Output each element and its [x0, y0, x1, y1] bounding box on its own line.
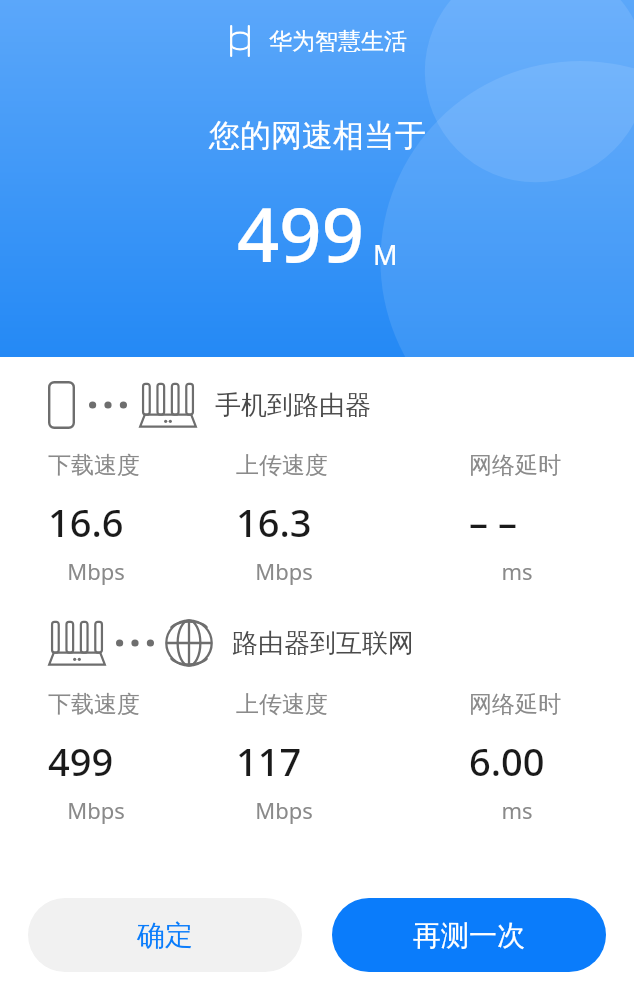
staticText: 上传速度 — [236, 451, 328, 480]
staticText: 下载速度 — [48, 690, 140, 719]
staticText: 16.6 — [48, 496, 124, 548]
staticText: 确定 — [137, 918, 193, 953]
staticText: 上传速度 — [236, 690, 328, 719]
staticText: ms — [469, 795, 565, 825]
staticText: – – — [469, 496, 517, 548]
staticText: 网络延时 — [469, 690, 561, 719]
staticText: 手机到路由器 — [215, 389, 371, 422]
staticText: 华为智慧生活 — [269, 27, 407, 56]
staticText: M — [373, 236, 398, 273]
staticText: 499 — [48, 735, 114, 787]
staticText: 您的网速相当于 — [209, 116, 426, 155]
staticText: 路由器到互联网 — [232, 627, 414, 660]
staticText: Mbps — [236, 556, 332, 586]
staticText: Mbps — [48, 795, 144, 825]
staticText: 499 — [237, 183, 364, 284]
staticText: Mbps — [236, 795, 332, 825]
staticText: ms — [469, 556, 565, 586]
staticText: 117 — [236, 735, 302, 787]
other: Huawei logo — [227, 26, 253, 56]
staticText: 6.00 — [469, 735, 545, 787]
staticText: 网络延时 — [469, 451, 561, 480]
button[interactable]: 再测一次 — [332, 898, 606, 972]
staticText: 16.3 — [236, 496, 312, 548]
staticText: Mbps — [48, 556, 144, 586]
staticText: 再测一次 — [413, 918, 525, 953]
button[interactable]: 确定 — [28, 898, 302, 972]
staticText: 下载速度 — [48, 451, 140, 480]
